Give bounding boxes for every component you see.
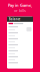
staticText: Pay in Game, [8, 3, 32, 8]
staticText: Balance [9, 17, 21, 21]
staticText: or bills [14, 8, 26, 13]
